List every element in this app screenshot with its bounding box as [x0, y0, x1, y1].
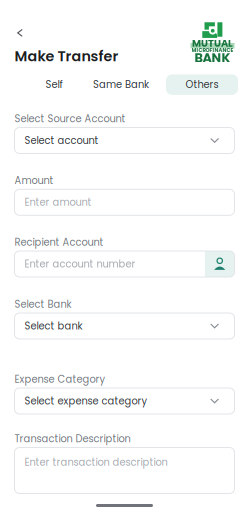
staticText: Enter account number [24, 257, 135, 271]
staticText: Same Bank [93, 78, 149, 91]
button[interactable]: Select account [14, 127, 234, 153]
button[interactable]: Choose beneficiary [205, 251, 234, 277]
button[interactable]: Select expense category [14, 388, 234, 414]
staticText: Select Source Account [14, 112, 125, 126]
staticText: Recipient Account [14, 235, 103, 249]
staticText: Enter transaction description [24, 455, 167, 469]
staticText: Select bank [24, 319, 82, 333]
button[interactable]: Back [9, 24, 31, 42]
staticText: Select account [24, 134, 98, 147]
staticText: BANK [194, 49, 230, 67]
staticText: Expense Category [14, 372, 105, 386]
button[interactable]: Select bank [14, 313, 234, 339]
staticText: MICROFINANCE [191, 47, 233, 54]
button[interactable]: Others [166, 74, 238, 95]
staticText: Select expense category [24, 394, 147, 408]
staticText: Enter amount [24, 195, 91, 209]
staticText: Select Bank [14, 297, 71, 311]
staticText: Amount [14, 174, 53, 187]
staticText: MUTUAL [192, 36, 233, 50]
button[interactable]: Self [32, 74, 76, 95]
staticText: Transaction Description [14, 432, 130, 446]
button[interactable]: Same Bank [88, 74, 154, 95]
staticText: Others [185, 78, 218, 91]
staticText: Make Transfer [14, 46, 118, 66]
staticText: Self [45, 78, 62, 91]
